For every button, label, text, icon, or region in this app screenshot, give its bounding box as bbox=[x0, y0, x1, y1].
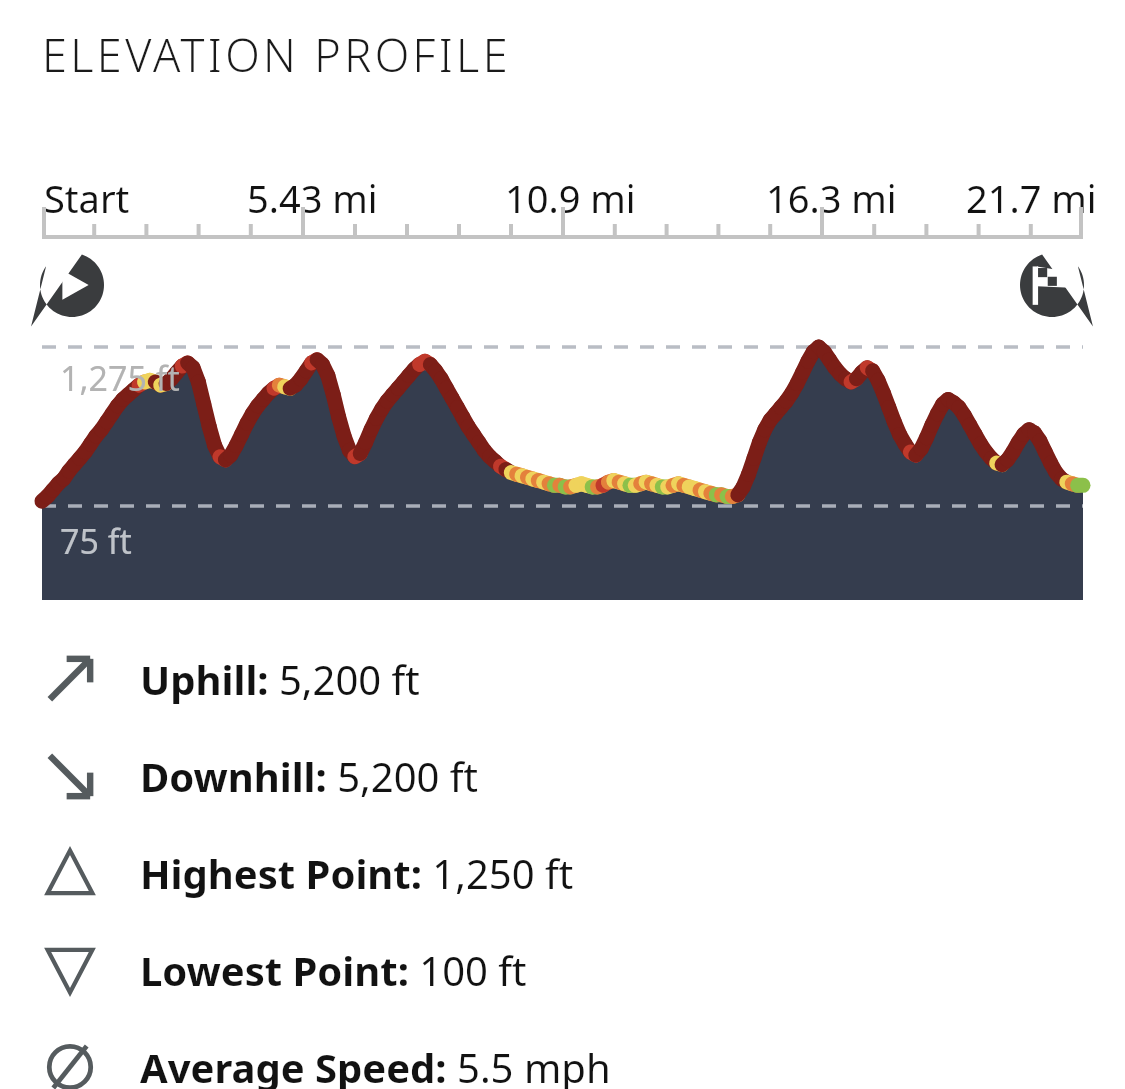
other: Downhill bbox=[42, 748, 98, 804]
other: Average Speed bbox=[42, 1039, 98, 1089]
other: Lowest Point bbox=[42, 942, 98, 998]
staticText: Lowest Point: 100 ft bbox=[140, 943, 527, 997]
button[interactable]: Downhill bbox=[0, 727, 1125, 824]
button[interactable]: Uphill bbox=[0, 630, 1125, 727]
staticText: 21.7 mi bbox=[966, 172, 1097, 224]
button[interactable]: Highest Point bbox=[0, 824, 1125, 921]
staticText: 5.43 mi bbox=[247, 172, 378, 224]
other: Uphill bbox=[42, 651, 98, 707]
button[interactable]: Average Speed bbox=[0, 1018, 1125, 1089]
other: Highest Point bbox=[42, 845, 98, 901]
staticText: ELEVATION PROFILE bbox=[42, 24, 511, 85]
staticText: 1,275 ft bbox=[60, 355, 180, 401]
staticText: 16.3 mi bbox=[766, 172, 897, 224]
staticText: Highest Point: 1,250 ft bbox=[140, 846, 574, 900]
staticText: Average Speed: 5.5 mph bbox=[140, 1040, 611, 1089]
staticText: 75 ft bbox=[60, 518, 132, 564]
button[interactable]: Lowest Point bbox=[0, 921, 1125, 1018]
staticText: Start bbox=[44, 172, 130, 224]
staticText: 10.9 mi bbox=[505, 172, 636, 224]
staticText: Downhill: 5,200 ft bbox=[140, 749, 478, 803]
staticText: Uphill: 5,200 ft bbox=[140, 652, 420, 706]
